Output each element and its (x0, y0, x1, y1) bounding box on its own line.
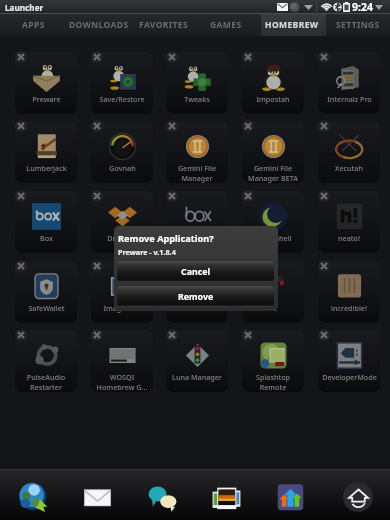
staticText: neato! (338, 233, 360, 243)
button[interactable]: moonshell (242, 191, 304, 253)
button[interactable]: Cancel (117, 261, 274, 282)
staticText: APPS (22, 19, 45, 31)
button[interactable]: Impostah (242, 52, 304, 114)
staticText: DeveloperMode (322, 372, 377, 382)
button[interactable]: Internalz Pro (318, 52, 380, 114)
button[interactable]: Remove neato! (318, 190, 330, 202)
button[interactable]: SETTINGS (330, 14, 386, 36)
staticText: Luna Manager (172, 372, 222, 382)
staticText: Tablet Edition (174, 303, 221, 313)
staticText: WOSQI Homebrew G... (92, 372, 152, 392)
button[interactable]: Remove Gemini File Manager (166, 120, 178, 132)
staticText: Impostah (256, 94, 290, 104)
button[interactable]: Luna Manager (166, 330, 228, 392)
button[interactable]: Remove Gemini File Manager BETA (242, 120, 254, 132)
staticText: ze (269, 303, 277, 313)
button[interactable]: Remove Lumberjack (15, 120, 27, 132)
button[interactable]: Save/Restore (91, 52, 153, 114)
button[interactable]: Tweaks (166, 52, 228, 114)
button[interactable]: Box (15, 191, 77, 253)
button[interactable]: Remove Preware (15, 51, 27, 63)
button[interactable]: Dropbox (91, 191, 153, 253)
staticText: Remove (178, 291, 214, 303)
button[interactable]: ze (242, 261, 304, 323)
staticText: Dropbox (107, 233, 137, 243)
staticText: Gemini File Manager (167, 163, 227, 183)
button[interactable]: Tablet Edition (166, 261, 228, 323)
button[interactable]: Remove Box (15, 190, 27, 202)
button[interactable]: Remove ze (242, 260, 254, 272)
button[interactable]: Messaging (146, 481, 178, 513)
button[interactable]: Home (343, 482, 373, 512)
staticText: FAVORITES (139, 19, 189, 31)
button[interactable]: Remove Govnah (91, 120, 103, 132)
staticText: Save/Restore (99, 94, 145, 104)
button[interactable]: DeveloperMode (318, 330, 380, 392)
button[interactable]: Remove Impostah (242, 51, 254, 63)
staticText: Preware - v.1.8.4 (118, 247, 176, 257)
staticText: SETTINGS (336, 19, 380, 31)
button[interactable]: Preware (15, 52, 77, 114)
button[interactable]: HOMEBREW (259, 14, 324, 36)
button[interactable]: SafeWallet (15, 261, 77, 323)
staticText: box (191, 233, 204, 243)
staticText: 9:24 (352, 0, 373, 14)
button[interactable]: Xecutah (318, 121, 380, 183)
button[interactable]: Remove Tweaks (166, 51, 178, 63)
button[interactable]: FAVORITES (134, 14, 194, 36)
button[interactable]: incredible! (318, 261, 380, 323)
button[interactable]: Remove Luna Manager (166, 329, 178, 341)
staticText: HOMEBREW (265, 19, 319, 31)
staticText: ImageView (103, 303, 142, 313)
button[interactable]: Remove SafeWallet (15, 260, 27, 272)
button[interactable]: Remove Tablet Edition (166, 260, 178, 272)
button[interactable]: Remove DeveloperMode (318, 329, 330, 341)
staticText: incredible! (331, 303, 367, 313)
button[interactable]: App Catalog (274, 481, 306, 513)
button[interactable]: WOSQI Homebrew G... (91, 330, 153, 392)
button[interactable]: DOWNLOADS (66, 14, 132, 36)
button[interactable]: Remove Internalz Pro (318, 51, 330, 63)
button[interactable]: box (166, 191, 228, 253)
button[interactable]: Gemini File Manager (166, 121, 228, 183)
button[interactable]: ImageView (91, 261, 153, 323)
button[interactable]: neato! (318, 191, 380, 253)
button[interactable]: GAMES (202, 14, 250, 36)
button[interactable]: Remove moonshell (242, 190, 254, 202)
staticText: Cancel (181, 266, 211, 278)
button[interactable]: Lumberjack (15, 121, 77, 183)
staticText: Tweaks (184, 94, 210, 104)
button[interactable]: Photos (210, 481, 242, 513)
button[interactable]: Splashtop Remote (242, 330, 304, 392)
staticText: PulseAudio Restarter (16, 372, 76, 392)
button[interactable]: Remove (117, 286, 274, 307)
button[interactable]: Remove Xecutah (318, 120, 330, 132)
button[interactable]: Remove Save/Restore (91, 51, 103, 63)
button[interactable]: Remove Splashtop Remote (242, 329, 254, 341)
button[interactable]: Gemini File Manager BETA (242, 121, 304, 183)
button[interactable]: Remove ImageView (91, 260, 103, 272)
button[interactable]: Remove PulseAudio Restarter (15, 329, 27, 341)
button[interactable]: Remove box (166, 190, 178, 202)
button[interactable]: Govnah (91, 121, 153, 183)
staticText: Govnah (109, 163, 136, 173)
button[interactable]: Email (81, 481, 113, 513)
staticText: moonshell (255, 233, 292, 243)
staticText: Launcher (5, 2, 44, 13)
button[interactable]: Remove incredible! (318, 260, 330, 272)
button[interactable]: Remove WOSQI Homebrew G... (91, 329, 103, 341)
button[interactable]: Browser (17, 481, 49, 513)
staticText: Xecutah (335, 163, 363, 173)
button[interactable]: Remove Dropbox (91, 190, 103, 202)
staticText: GAMES (210, 19, 242, 31)
staticText: Internalz Pro (327, 94, 372, 104)
staticText: Remove Application? (118, 232, 214, 245)
staticText: Lumberjack (26, 163, 67, 173)
staticText: DOWNLOADS (69, 19, 129, 31)
staticText: Splashtop Remote (243, 372, 303, 392)
button[interactable]: PulseAudio Restarter (15, 330, 77, 392)
staticText: Box (40, 233, 53, 243)
button[interactable]: APPS (10, 14, 56, 36)
staticText: Gemini File Manager BETA (243, 163, 303, 183)
staticText: Preware (32, 94, 61, 104)
